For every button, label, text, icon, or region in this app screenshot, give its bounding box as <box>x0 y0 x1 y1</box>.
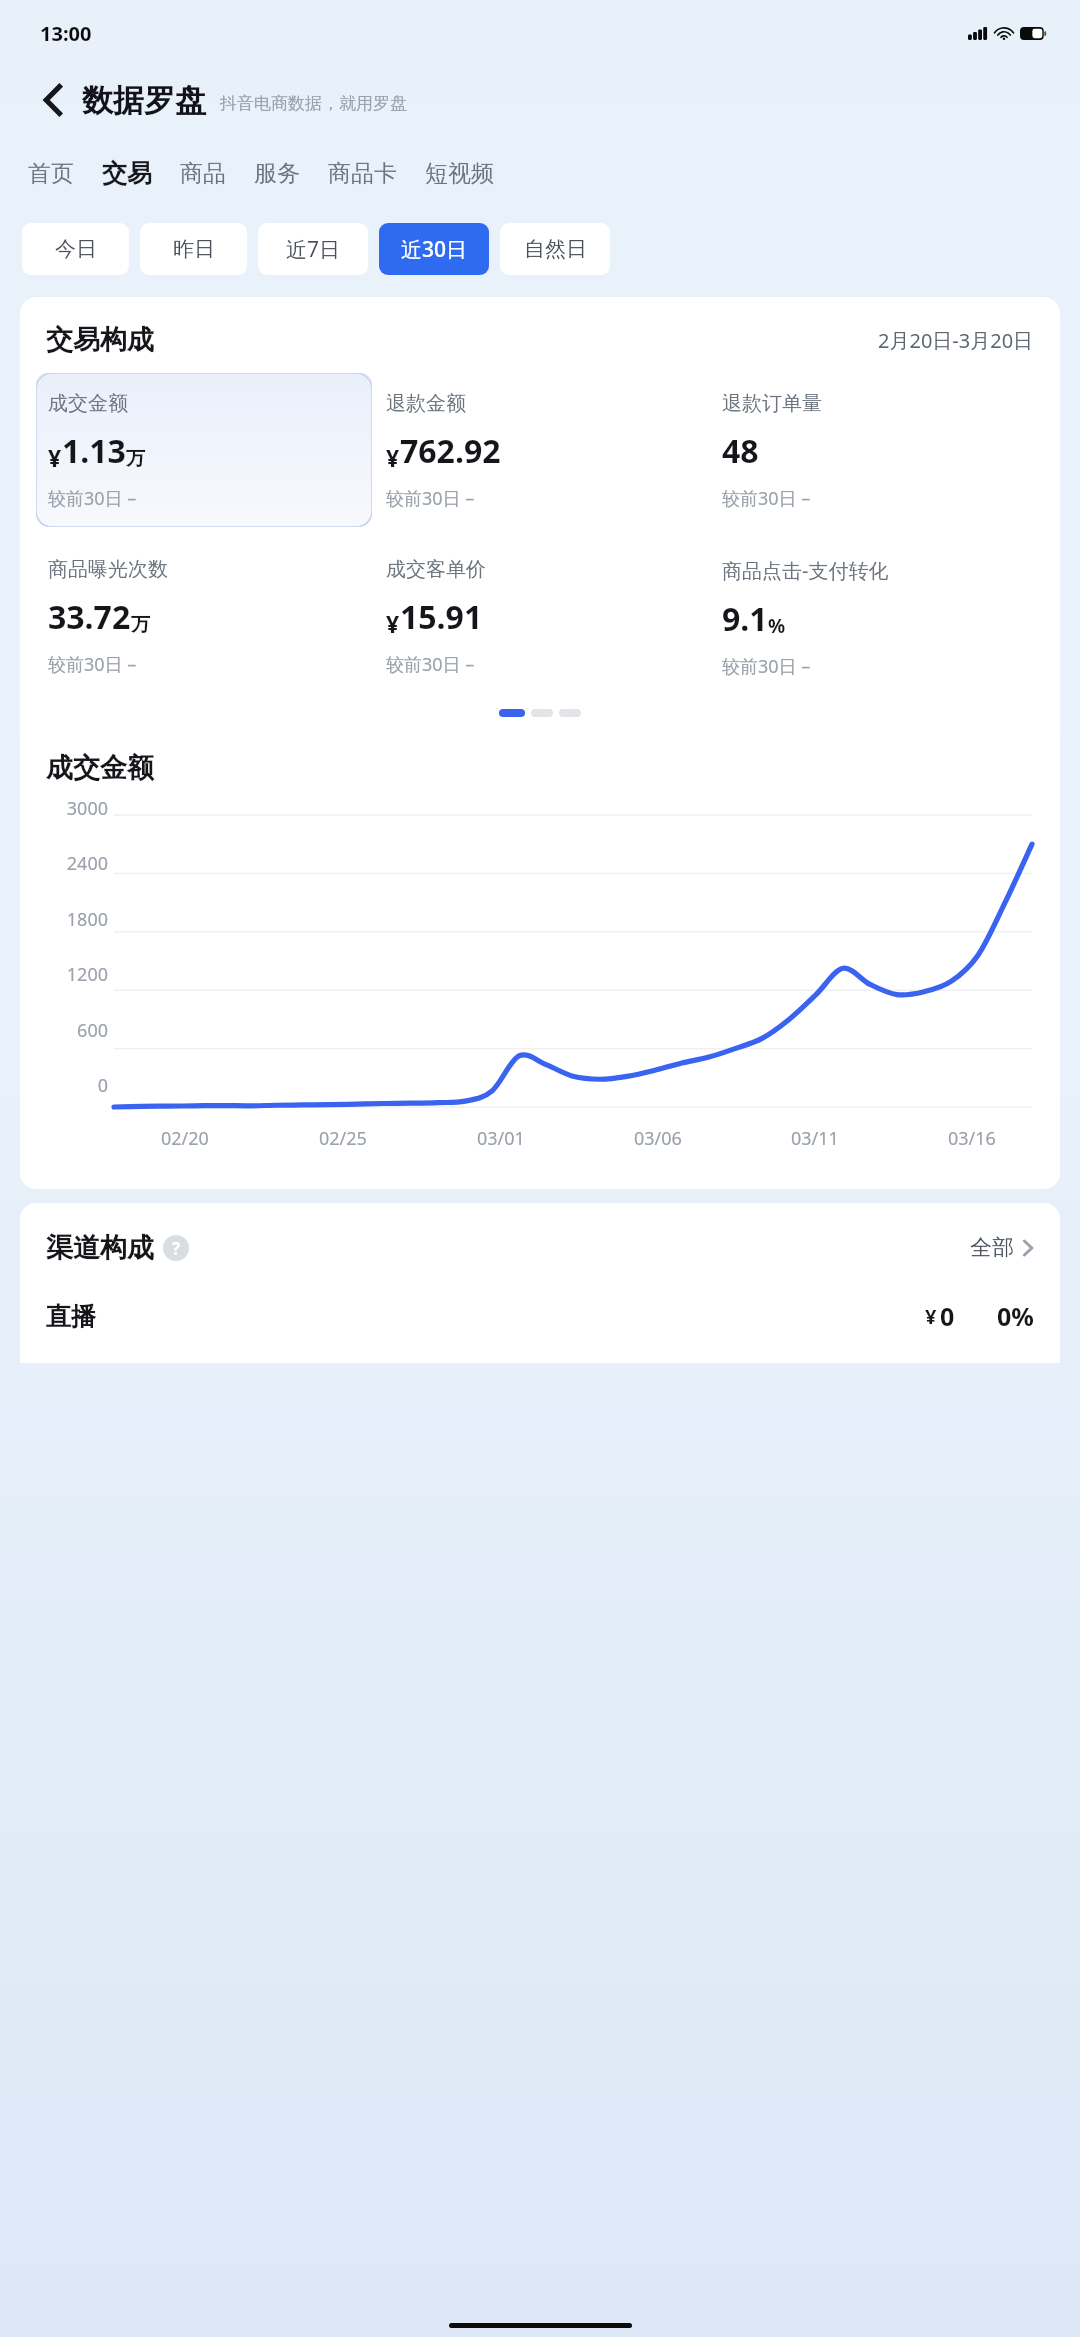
button[interactable]: 昨日 <box>140 223 247 275</box>
staticText: 商品点击-支付转化 <box>722 557 889 584</box>
staticText: 商品曝光次数 <box>48 557 168 582</box>
staticText: 交易构成 <box>46 323 154 357</box>
button[interactable]: 今日 <box>22 223 129 275</box>
button[interactable]: 商品卡 <box>328 159 397 188</box>
staticText: 短视频 <box>425 159 494 188</box>
staticText: 交易 <box>102 158 152 189</box>
staticText: 1800 <box>66 907 108 932</box>
button[interactable]: 商品 <box>180 159 226 188</box>
button[interactable]: 服务 <box>254 159 300 188</box>
staticText: 较前30日 – <box>722 486 811 511</box>
staticText: 自然日 <box>524 236 587 262</box>
staticText: 03/16 <box>948 1126 996 1151</box>
staticText: 较前30日 – <box>386 652 475 677</box>
button[interactable]: 近7日 <box>258 223 368 275</box>
staticText: 数据罗盘 <box>82 81 206 120</box>
staticText: 商品 <box>180 159 226 188</box>
staticText: 抖音电商数据，就用罗盘 <box>220 93 407 114</box>
staticText: 全部 <box>970 1234 1014 1262</box>
staticText: 退款订单量 <box>722 391 822 416</box>
button[interactable]: 自然日 <box>500 223 610 275</box>
staticText: 600 <box>77 1018 108 1043</box>
staticText: 万 <box>126 447 145 471</box>
button[interactable]: 短视频 <box>425 159 494 188</box>
staticText: 03/06 <box>634 1126 682 1151</box>
button[interactable]: Back <box>30 77 76 123</box>
staticText: 昨日 <box>173 236 215 262</box>
staticText: 万 <box>131 613 150 637</box>
button[interactable]: 全部 <box>970 1234 1034 1262</box>
staticText: 13:00 <box>40 20 92 47</box>
staticText: 0 <box>97 1073 108 1098</box>
staticText: 退款金额 <box>386 391 466 416</box>
staticText: 近30日 <box>401 235 468 264</box>
staticText: ? <box>172 1237 181 1260</box>
staticText: ¥ <box>386 442 400 473</box>
button[interactable]: 交易 <box>102 158 152 189</box>
staticText: 商品卡 <box>328 159 397 188</box>
staticText: 762.92 <box>400 429 501 473</box>
staticText: 成交金额 <box>46 751 154 785</box>
button[interactable]: 成交金额 <box>36 373 372 527</box>
staticText: 近7日 <box>286 235 341 264</box>
staticText: 较前30日 – <box>722 654 811 679</box>
staticText: 2月20日-3月20日 <box>878 327 1034 354</box>
staticText: % <box>768 613 786 639</box>
staticText: 03/01 <box>477 1126 525 1151</box>
staticText: ¥ <box>48 442 62 473</box>
staticText: 成交客单价 <box>386 557 486 582</box>
staticText: 2400 <box>66 851 108 876</box>
staticText: 0% <box>997 1299 1034 1333</box>
staticText: 48 <box>722 429 759 473</box>
staticText: 渠道构成 <box>46 1231 154 1265</box>
button[interactable]: Help <box>163 1235 189 1261</box>
staticText: 较前30日 – <box>48 486 137 511</box>
staticText: 9.1 <box>722 597 768 641</box>
staticText: 15.91 <box>400 595 483 639</box>
staticText: 较前30日 – <box>386 486 475 511</box>
staticText: 3000 <box>66 796 108 821</box>
staticText: 1200 <box>66 962 108 987</box>
staticText: 02/25 <box>319 1126 367 1151</box>
staticText: 1.13 <box>62 429 126 473</box>
staticText: 服务 <box>254 159 300 188</box>
staticText: 33.72 <box>48 595 131 639</box>
staticText: 今日 <box>55 236 97 262</box>
staticText: ¥ <box>925 1303 937 1330</box>
staticText: 02/20 <box>161 1126 209 1151</box>
staticText: 0 <box>940 1299 955 1333</box>
button[interactable]: 首页 <box>28 159 74 188</box>
staticText: 首页 <box>28 159 74 188</box>
staticText: 直播 <box>46 1301 96 1332</box>
staticText: ¥ <box>386 608 400 639</box>
staticText: 03/11 <box>791 1126 839 1151</box>
staticText: 较前30日 – <box>48 652 137 677</box>
staticText: 成交金额 <box>48 391 128 416</box>
button[interactable]: 近30日 <box>379 223 489 275</box>
